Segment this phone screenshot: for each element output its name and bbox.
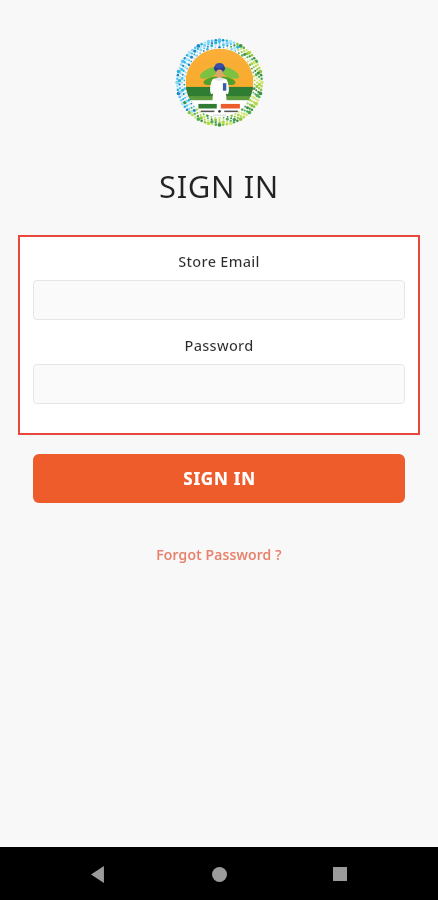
staticText: Forgot Password ? <box>156 545 282 564</box>
staticText: SIGN IN <box>183 467 256 490</box>
button[interactable]: Recent apps <box>317 851 363 897</box>
button[interactable]: Password input <box>33 364 405 404</box>
staticText: Password <box>184 335 254 355</box>
other: Krop Kare logo <box>177 40 262 125</box>
button[interactable]: Back <box>75 851 121 897</box>
button[interactable]: SIGN IN <box>33 454 405 503</box>
staticText: SIGN IN <box>159 165 279 207</box>
button[interactable]: Home <box>196 851 242 897</box>
staticText: Store Email <box>178 251 260 271</box>
button[interactable]: Forgot Password ? <box>146 541 292 568</box>
button[interactable]: Store Email input <box>33 280 405 320</box>
